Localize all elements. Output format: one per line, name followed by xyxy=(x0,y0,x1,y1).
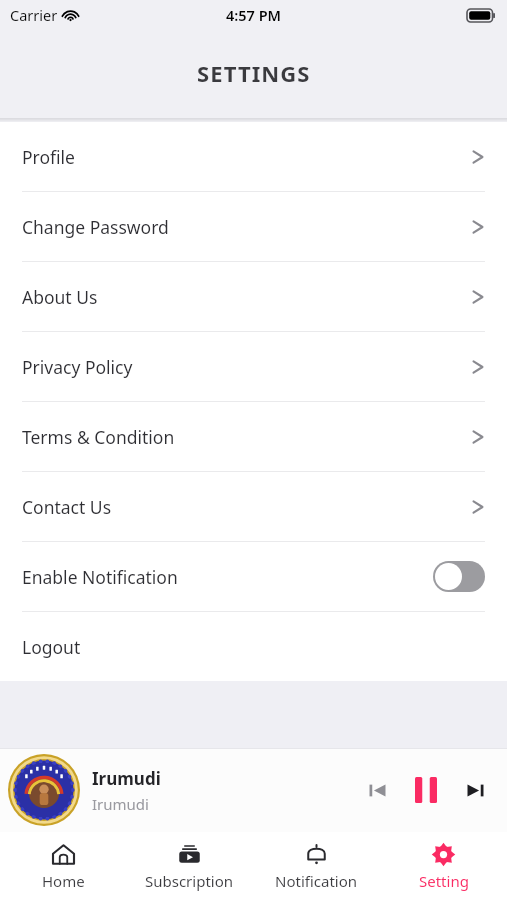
button[interactable]: About Us xyxy=(0,262,507,331)
button[interactable]: Home xyxy=(0,832,126,900)
staticText: Logout xyxy=(22,635,81,659)
staticText: 4:57 PM xyxy=(226,5,282,25)
staticText: Profile xyxy=(22,145,75,169)
staticText: Home xyxy=(42,871,85,891)
staticText: Irumudi xyxy=(92,794,149,814)
button[interactable]: Notification xyxy=(253,832,380,900)
staticText: About Us xyxy=(22,285,98,309)
button[interactable]: Next xyxy=(453,768,497,812)
button[interactable]: Setting xyxy=(380,832,507,900)
staticText: Irumudi xyxy=(92,767,161,790)
staticText: Contact Us xyxy=(22,495,112,519)
staticText: Subscription xyxy=(145,871,234,891)
staticText: SETTINGS xyxy=(197,58,311,88)
staticText: Setting xyxy=(419,871,469,891)
button[interactable]: Pause xyxy=(399,763,453,817)
button[interactable]: Change Password xyxy=(0,192,507,261)
button[interactable]: Privacy Policy xyxy=(0,332,507,401)
button[interactable]: Profile xyxy=(0,122,507,191)
button[interactable]: Subscription xyxy=(126,832,253,900)
staticText: Privacy Policy xyxy=(22,355,133,379)
staticText: Notification xyxy=(275,871,358,891)
other: Enable Notification toggle xyxy=(433,561,485,592)
staticText: Terms & Condition xyxy=(22,425,175,449)
button[interactable]: Enable Notification xyxy=(0,542,507,611)
button[interactable]: Previous xyxy=(355,768,399,812)
staticText: Enable Notification xyxy=(22,565,178,589)
staticText: Carrier xyxy=(10,5,58,25)
button[interactable]: Logout xyxy=(0,612,507,681)
button[interactable]: Irumudi xyxy=(0,748,507,832)
staticText: Change Password xyxy=(22,215,169,239)
button[interactable]: Terms & Condition xyxy=(0,402,507,471)
button[interactable]: Contact Us xyxy=(0,472,507,541)
